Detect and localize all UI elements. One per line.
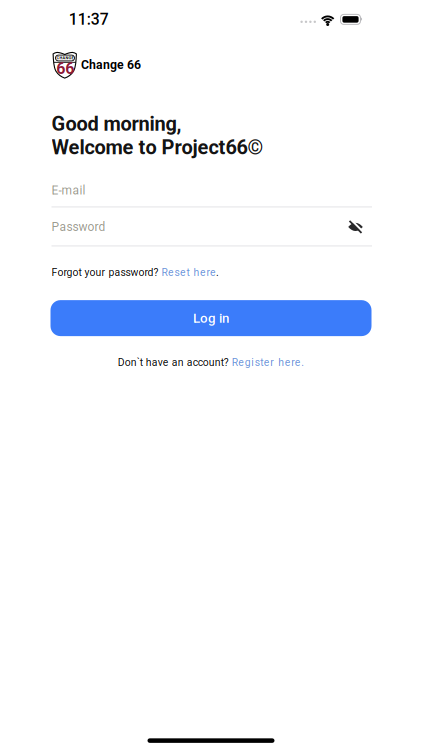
button[interactable]: Log in <box>50 300 371 336</box>
button[interactable]: Show password <box>347 219 363 235</box>
textField[interactable]: Password <box>51 220 372 234</box>
staticText: 66 <box>56 59 74 78</box>
staticText: . <box>216 266 219 279</box>
staticText: Change 66 <box>81 58 141 72</box>
staticText: CHANGE <box>56 56 73 60</box>
staticText: Reset here <box>161 266 216 279</box>
staticText: E-mail <box>51 183 85 197</box>
staticText: Log in <box>193 310 229 326</box>
staticText: Good morning, Welcome to Project66© <box>51 112 263 159</box>
staticText: Forgot your password? <box>51 266 161 279</box>
button[interactable]: Register here. <box>232 356 304 368</box>
staticText: Don`t have an account? <box>118 356 232 368</box>
staticText: Register here. <box>232 356 304 368</box>
textField[interactable]: E-mail <box>51 183 372 197</box>
staticText: 11:37 <box>69 10 109 28</box>
button[interactable]: Reset here <box>161 266 216 279</box>
staticText: Password <box>51 220 105 234</box>
